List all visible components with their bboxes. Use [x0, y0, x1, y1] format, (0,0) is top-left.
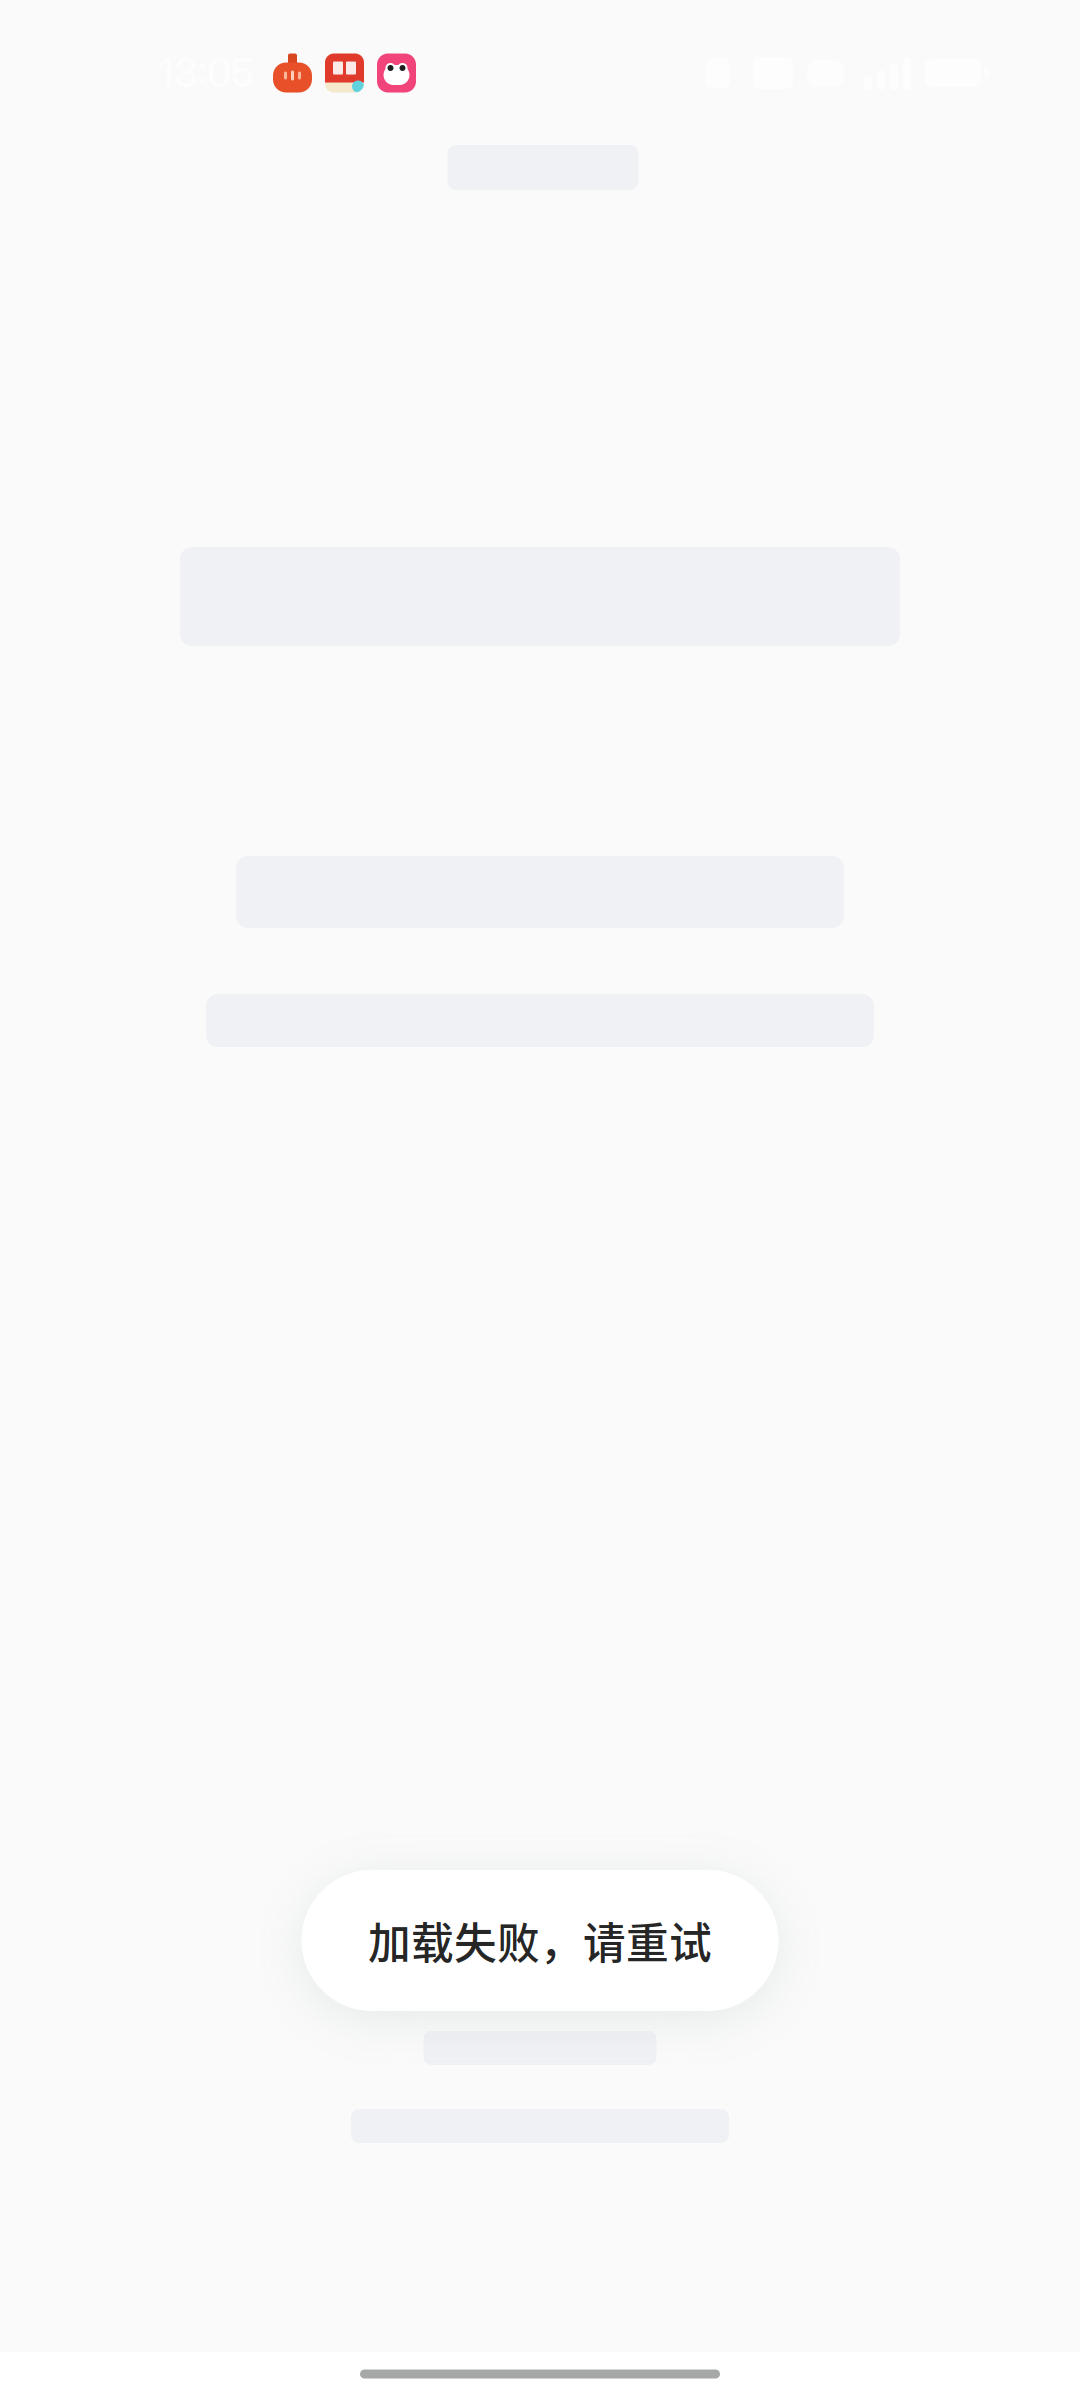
staticText: 加载失败，请重试	[368, 1910, 712, 1971]
button[interactable]: 加载失败，请重试	[301, 1870, 778, 2011]
